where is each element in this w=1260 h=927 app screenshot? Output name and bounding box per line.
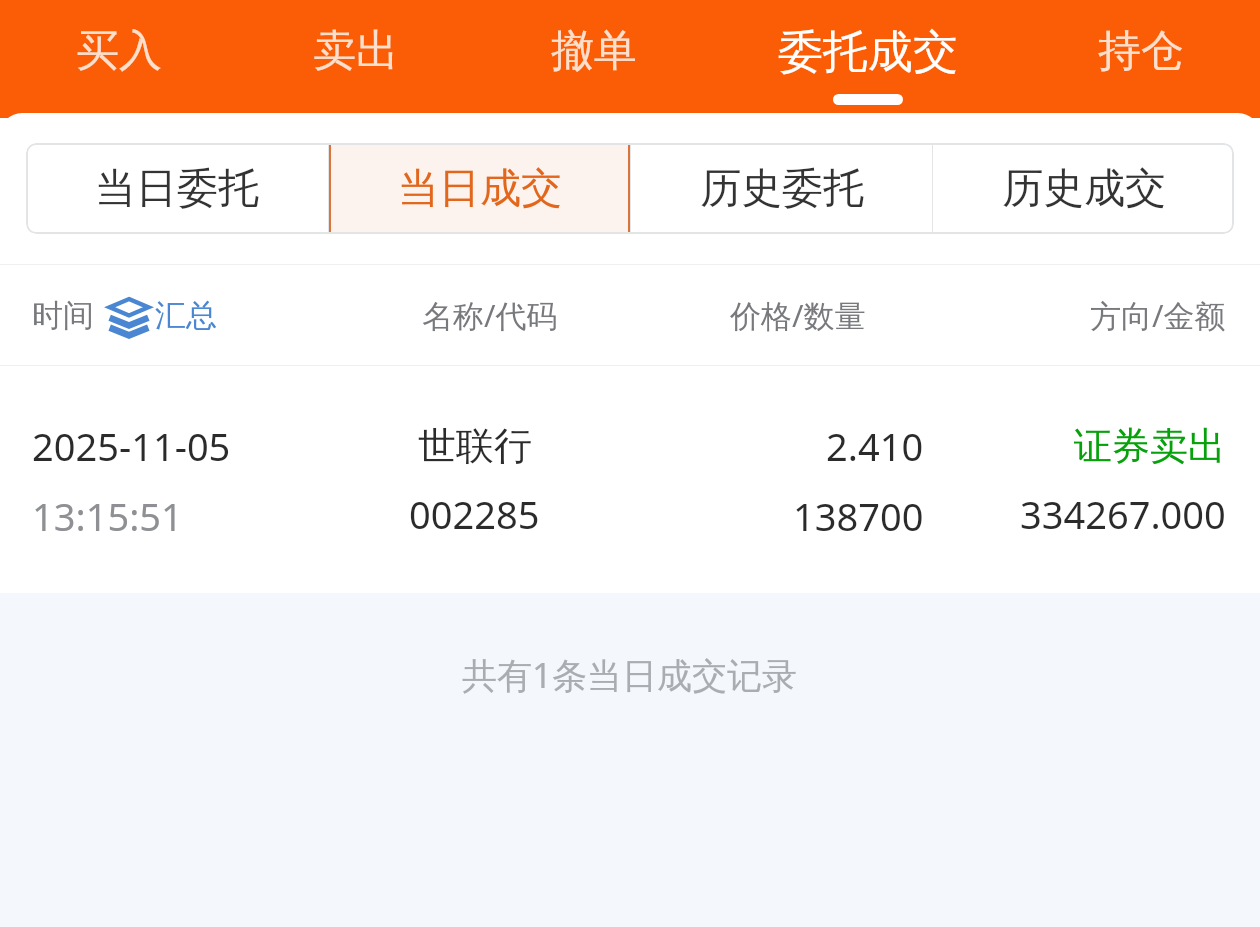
staticText: 当日成交 (398, 163, 562, 215)
button[interactable]: 汇总 (108, 296, 217, 335)
button[interactable]: 历史委托 (631, 143, 932, 234)
button[interactable]: 卖出 (237, 0, 475, 118)
staticText: 买入 (76, 24, 162, 78)
button[interactable]: 当日委托 (26, 143, 328, 234)
staticText: 方向/金额 (1090, 294, 1226, 336)
staticText: 2.410 (826, 420, 924, 472)
button[interactable]: 当日成交 (329, 143, 630, 234)
staticText: 历史委托 (700, 163, 864, 215)
staticText: 委托成交 (778, 24, 958, 81)
staticText: 138700 (793, 490, 924, 542)
button[interactable]: 历史成交 (933, 143, 1234, 234)
staticText: 13:15:51 (32, 490, 183, 542)
staticText: 名称/代码 (422, 294, 558, 336)
staticText: 世联行 (418, 422, 532, 470)
staticText: 002285 (409, 488, 540, 540)
staticText: 共有1条当日成交记录 (462, 651, 798, 699)
staticText: 时间 (32, 296, 94, 335)
button[interactable]: 持仓 (1022, 0, 1260, 118)
staticText: 历史成交 (1002, 163, 1166, 215)
staticText: 证券卖出 (1074, 422, 1226, 470)
staticText: 持仓 (1098, 24, 1184, 78)
staticText: 当日委托 (95, 163, 259, 215)
staticText: 334267.000 (1020, 488, 1226, 540)
staticText: 卖出 (313, 24, 399, 78)
staticText: 汇总 (155, 296, 217, 335)
button[interactable]: 委托成交 (713, 0, 1022, 118)
staticText: 价格/数量 (730, 294, 866, 336)
button[interactable]: 2025-11-05 (0, 366, 1260, 595)
staticText: 撤单 (551, 24, 637, 78)
staticText: 2025-11-05 (32, 420, 231, 472)
button[interactable]: 买入 (0, 0, 237, 118)
button[interactable]: 撤单 (475, 0, 713, 118)
